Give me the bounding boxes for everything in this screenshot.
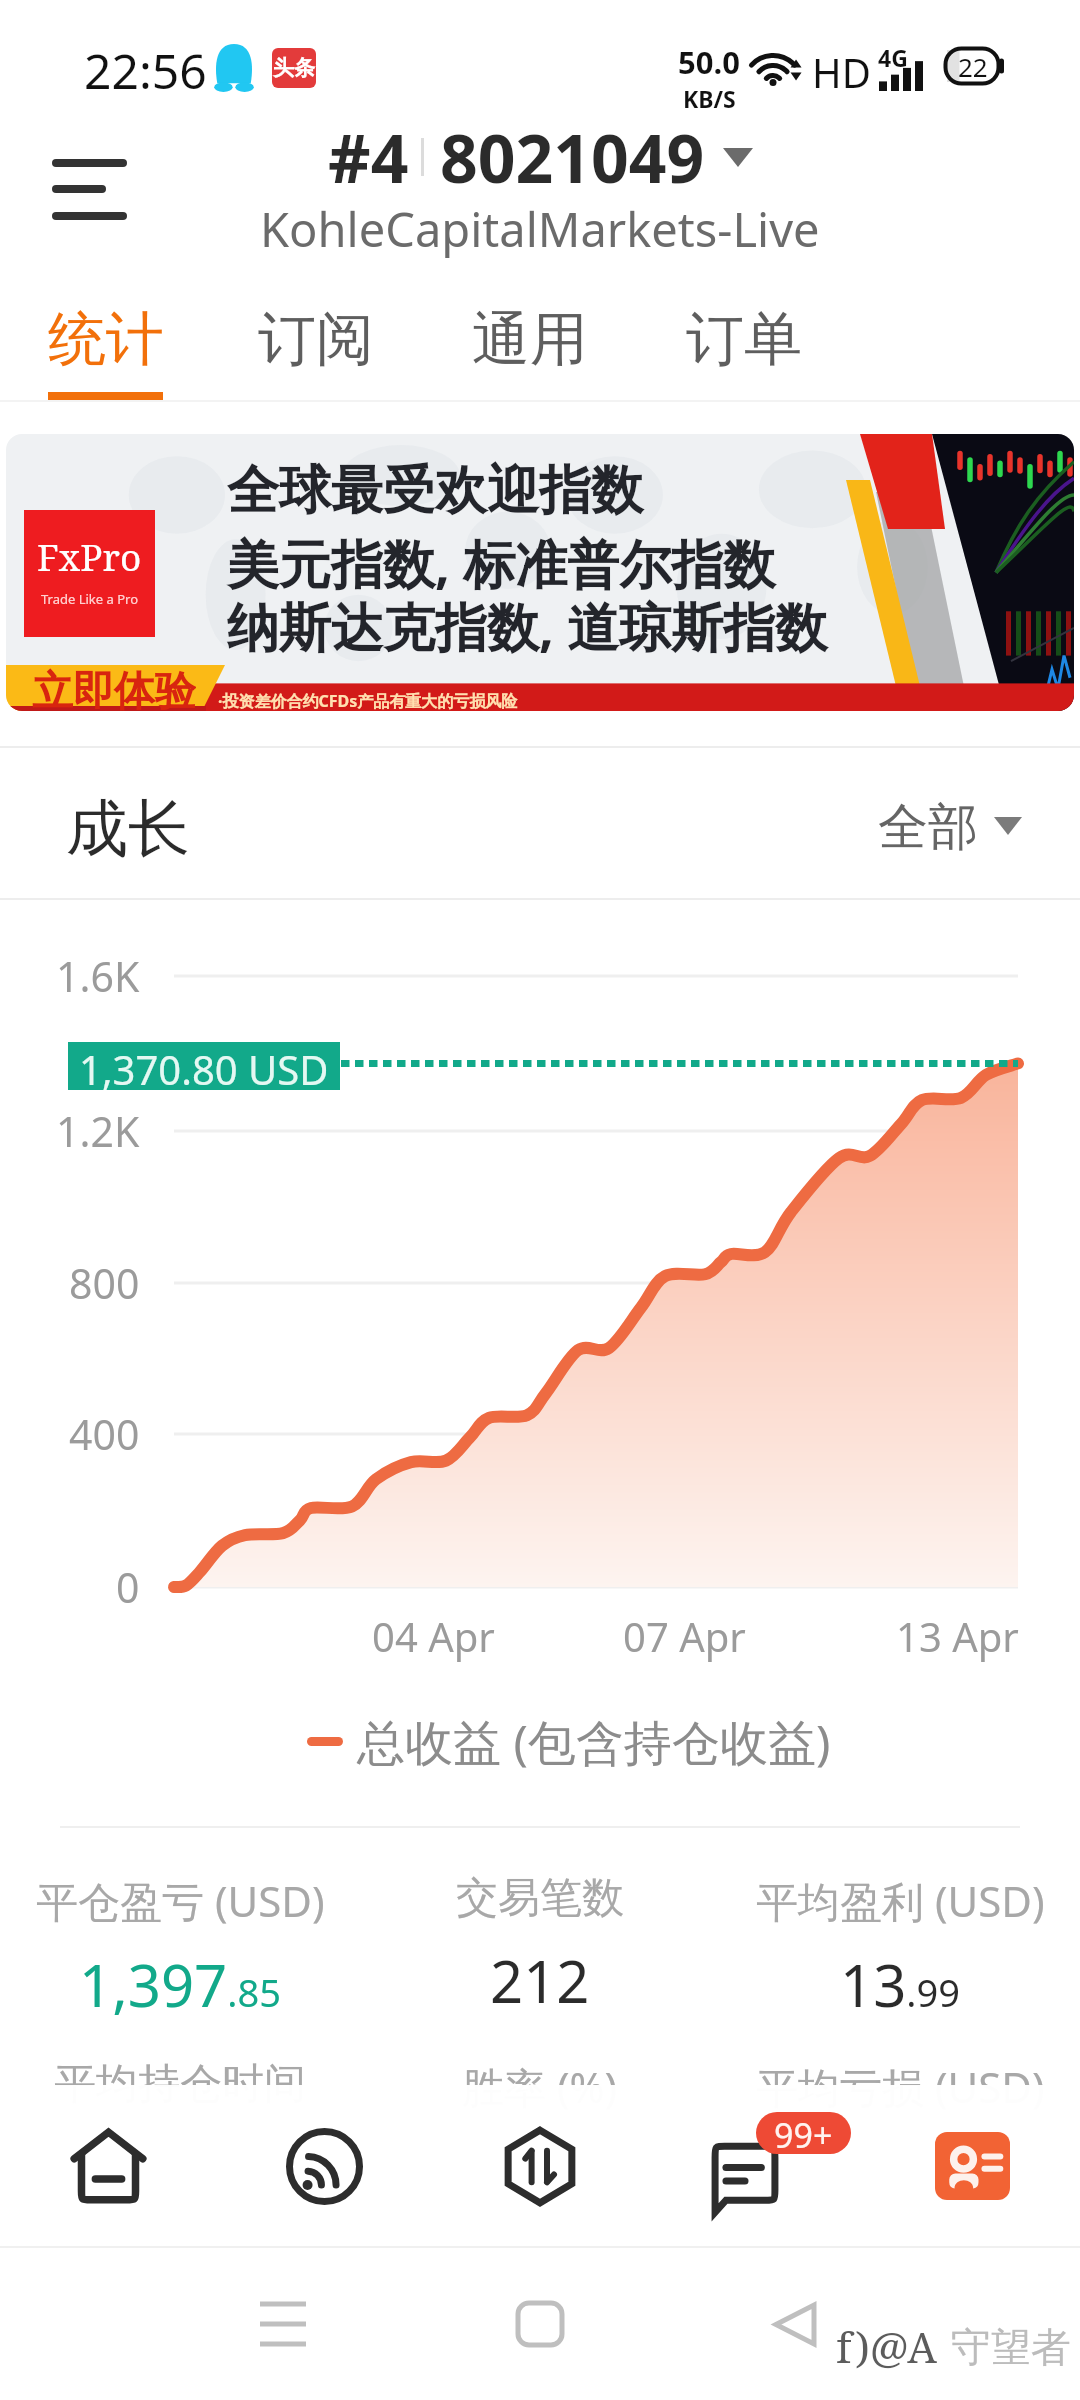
button[interactable]: Back — [740, 2280, 850, 2368]
button[interactable]: Recents — [228, 2280, 338, 2368]
staticText: 立即体验 — [32, 666, 196, 711]
staticText: FxPro — [37, 531, 142, 581]
button[interactable]: Home — [485, 2280, 595, 2368]
staticText: 1,370.80 USD — [79, 1042, 329, 1090]
staticText: 订单 — [686, 303, 802, 376]
button[interactable]: 订阅 — [258, 294, 376, 400]
staticText: 1.2K — [56, 1103, 140, 1159]
staticText: Trade Like a Pro — [41, 590, 139, 608]
button[interactable]: Menu — [38, 142, 142, 238]
staticText: 13 Apr — [896, 1609, 1019, 1663]
staticText: 4G — [878, 42, 908, 73]
staticText: 平均亏损 (USD) — [756, 2058, 1045, 2115]
button[interactable]: 统计 — [48, 294, 166, 400]
staticText: 0 — [116, 1559, 140, 1615]
staticText: 99+ — [774, 2112, 833, 2154]
staticText: 平仓盈亏 (USD) — [36, 1872, 325, 1929]
staticText: 美元指数, 标准普尔指数 — [227, 527, 776, 598]
staticText: 通用 — [472, 303, 588, 376]
button[interactable]: Home — [0, 2085, 216, 2247]
button[interactable]: Trade — [432, 2085, 648, 2247]
button[interactable]: FxPro advertisement — [6, 434, 1074, 711]
button[interactable]: Messages — [648, 2085, 864, 2247]
staticText: #4 — [328, 112, 409, 202]
staticText: 1,397.85 — [79, 1945, 281, 2024]
staticText: 800 — [69, 1255, 140, 1311]
staticText: 50.0 — [678, 41, 740, 83]
staticText: 22:56 — [84, 38, 207, 103]
staticText: 成长 — [66, 790, 190, 868]
staticText: KohleCapitalMarkets-Live — [260, 197, 820, 261]
button[interactable]: Signals — [216, 2085, 432, 2247]
staticText: 头条 — [273, 55, 315, 81]
button[interactable]: 订单 — [686, 294, 804, 400]
staticText: HD — [812, 45, 871, 99]
staticText: 22 — [958, 49, 988, 84]
staticText: 8021049 — [440, 112, 705, 202]
staticText: KB/S — [683, 83, 736, 114]
button[interactable]: 全部 — [878, 796, 1028, 856]
staticText: ·投资差价合约CFDs产品有重大的亏损风险 — [218, 690, 518, 711]
button[interactable]: 通用 — [472, 294, 590, 400]
staticText: 400 — [69, 1406, 140, 1462]
staticText: 平均盈利 (USD) — [756, 1872, 1045, 1929]
staticText: 交易笔数 — [456, 1872, 624, 1925]
staticText: 07 Apr — [623, 1609, 746, 1663]
staticText: 胜率 (%) — [462, 2058, 618, 2115]
staticText: 统计 — [48, 303, 164, 376]
staticText: 全球最受欢迎指数 — [227, 458, 643, 524]
staticText: 04 Apr — [372, 1609, 495, 1663]
button[interactable]: Profile — [864, 2085, 1080, 2247]
staticText: 全部 — [878, 796, 978, 856]
staticText: 订阅 — [258, 303, 374, 376]
staticText: 守望者 — [951, 2322, 1071, 2372]
staticText: 总收益 (包含持仓收益) — [357, 1709, 831, 1775]
staticText: f)@A — [836, 2318, 937, 2375]
staticText: 212 — [490, 1941, 590, 2020]
staticText: 平均持仓时间 — [54, 2058, 306, 2111]
staticText: 13.99 — [840, 1945, 961, 2024]
staticText: 纳斯达克指数, 道琼斯指数 — [227, 590, 828, 661]
staticText: 1.6K — [56, 948, 140, 1004]
